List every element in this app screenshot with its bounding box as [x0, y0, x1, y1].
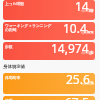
staticText: 14	[75, 0, 89, 14]
staticText: 67.5	[65, 96, 89, 100]
staticText: 10.4	[63, 22, 87, 36]
button[interactable]: 体重	[3, 96, 95, 100]
staticText: 14,974	[51, 42, 89, 56]
button[interactable]: ウォーキング＋ランニング の距離	[3, 22, 95, 40]
staticText: 昨日 22:30	[81, 51, 94, 55]
staticText: 歩数	[5, 44, 13, 49]
staticText: ウォーキング＋ランニング の距離	[5, 23, 52, 33]
staticText: 昨日 22:30	[81, 82, 94, 86]
staticText: 体脂肪率	[5, 75, 21, 80]
staticText: 階	[89, 8, 94, 13]
button[interactable]: 歩数	[3, 42, 95, 60]
staticText: 身体測定値	[3, 64, 25, 70]
staticText: 上った階数	[5, 1, 25, 6]
button[interactable]: 上った階数	[3, 0, 95, 20]
staticText: km	[87, 29, 94, 35]
button[interactable]: 体脂肪率	[3, 73, 95, 94]
staticText: 昨日 22:30	[81, 9, 94, 13]
staticText: %	[90, 80, 94, 86]
staticText: 昨日 22:30	[81, 31, 94, 35]
staticText: 歩	[89, 50, 94, 55]
staticText: 25.6	[66, 73, 90, 87]
staticText: 体重	[5, 98, 13, 100]
